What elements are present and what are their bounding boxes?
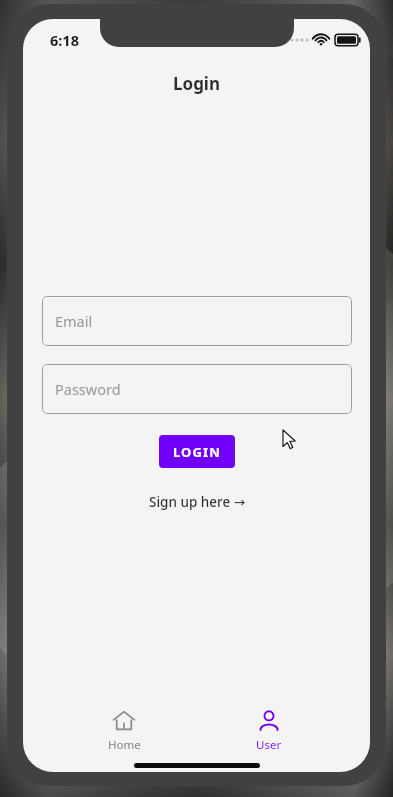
button[interactable]: Password xyxy=(42,364,352,414)
button[interactable]: Email xyxy=(42,296,352,346)
staticText: Login xyxy=(23,72,370,95)
button[interactable]: Home xyxy=(81,704,167,753)
staticText: Home xyxy=(108,737,141,753)
staticText: User xyxy=(256,737,282,753)
button[interactable]: User xyxy=(226,704,312,753)
staticText: Email xyxy=(55,311,93,331)
staticText: Password xyxy=(55,379,121,399)
staticText: LOGIN xyxy=(173,443,221,461)
staticText: Sign up here → xyxy=(149,493,245,511)
staticText: 6:18 xyxy=(50,30,79,50)
button[interactable]: Sign up here → xyxy=(143,489,251,515)
button[interactable]: LOGIN xyxy=(159,435,235,468)
